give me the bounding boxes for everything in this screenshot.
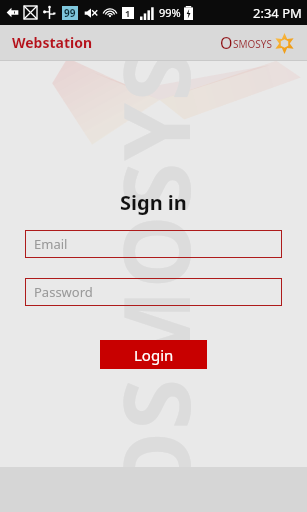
button[interactable]: Password	[25, 278, 282, 306]
staticText: 99%	[159, 5, 181, 20]
button[interactable]: Login	[100, 340, 207, 369]
staticText: 2:34 PM	[253, 4, 302, 22]
button[interactable]: Email	[25, 230, 282, 258]
staticText: SMOSYS	[233, 37, 273, 51]
staticText: Login	[134, 345, 174, 365]
staticText: Sign in	[120, 189, 187, 216]
staticText: OSMOSYS	[91, 48, 216, 504]
staticText: O	[220, 32, 233, 54]
other: Osmosys star logo	[274, 33, 295, 54]
staticText: Password	[34, 283, 93, 301]
staticText: 99	[64, 6, 76, 20]
staticText: Webstation	[12, 33, 93, 52]
staticText: 1	[125, 7, 131, 19]
staticText: Email	[34, 235, 68, 253]
